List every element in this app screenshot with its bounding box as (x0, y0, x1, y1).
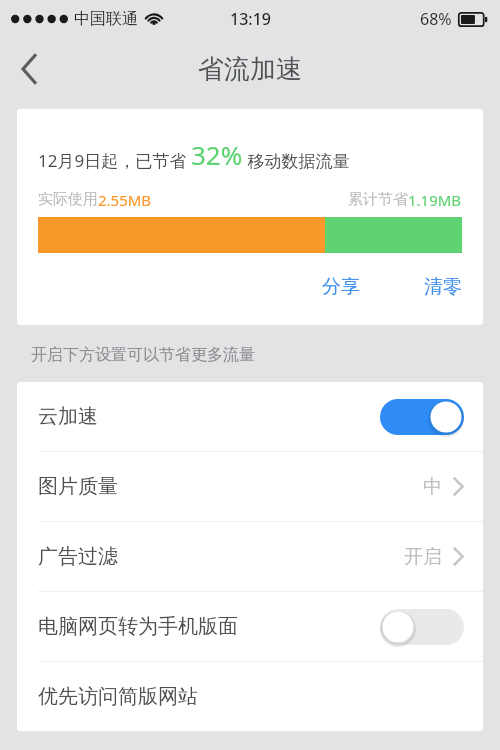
staticText: 2.55MB (98, 190, 152, 210)
button[interactable]: 分享 (314, 269, 368, 305)
staticText: Baidu 经验 (378, 707, 486, 736)
staticText: 图片质量 (38, 474, 118, 499)
button[interactable]: 清零 (416, 269, 470, 305)
staticText: 12月9日起，已节省 (38, 149, 191, 172)
staticText: 省流加速 (198, 53, 302, 86)
button[interactable]: 图片质量 (17, 452, 483, 521)
staticText: 优先访问简版网站 (38, 684, 198, 709)
button[interactable]: 云加速 (17, 382, 483, 451)
staticText: 中 (423, 475, 442, 499)
button[interactable]: Back (0, 40, 58, 98)
staticText: 广告过滤 (38, 544, 118, 569)
staticText: 开启 (404, 545, 442, 569)
staticText: 分享 (322, 275, 360, 299)
staticText: 13:19 (230, 8, 271, 30)
staticText: 1.19MB (408, 190, 462, 210)
staticText: 累计节省 (348, 190, 408, 209)
staticText: 实际使用 (38, 190, 98, 209)
staticText: 电脑网页转为手机版面 (38, 614, 238, 639)
staticText: 32% (191, 137, 243, 172)
staticText: 清零 (424, 275, 462, 299)
button[interactable]: 电脑网页转为手机版面 (17, 592, 483, 661)
staticText: 云加速 (38, 404, 98, 429)
staticText: 68% (420, 8, 452, 30)
staticText: 中国联通 (74, 9, 138, 29)
staticText: 移动数据流量 (243, 149, 350, 172)
button[interactable]: 优先访问简版网站 (17, 662, 483, 731)
staticText: 开启下方设置可以节省更多流量 (31, 345, 255, 365)
button[interactable]: 广告过滤 (17, 522, 483, 591)
